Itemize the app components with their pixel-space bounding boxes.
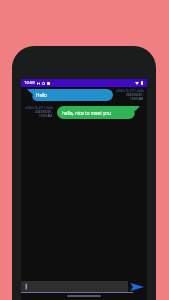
staticText: hello, nice to meet you — [62, 110, 111, 116]
button[interactable] — [21, 281, 128, 292]
button[interactable]: Send — [127, 281, 147, 293]
staticText: 2023/03/29 - — [35, 110, 53, 114]
staticText: 10:59 — [24, 80, 35, 86]
staticText: Hello — [36, 92, 48, 98]
staticText: 10:59 AM — [130, 97, 144, 101]
staticText: 10:59 AM — [39, 114, 53, 118]
staticText: a0f4ce7b-2f71-4e2b — [116, 89, 144, 93]
staticText: 2023/03/29 - — [126, 93, 144, 97]
staticText: a0f4ce7b-2f71-4e2b — [25, 106, 53, 110]
